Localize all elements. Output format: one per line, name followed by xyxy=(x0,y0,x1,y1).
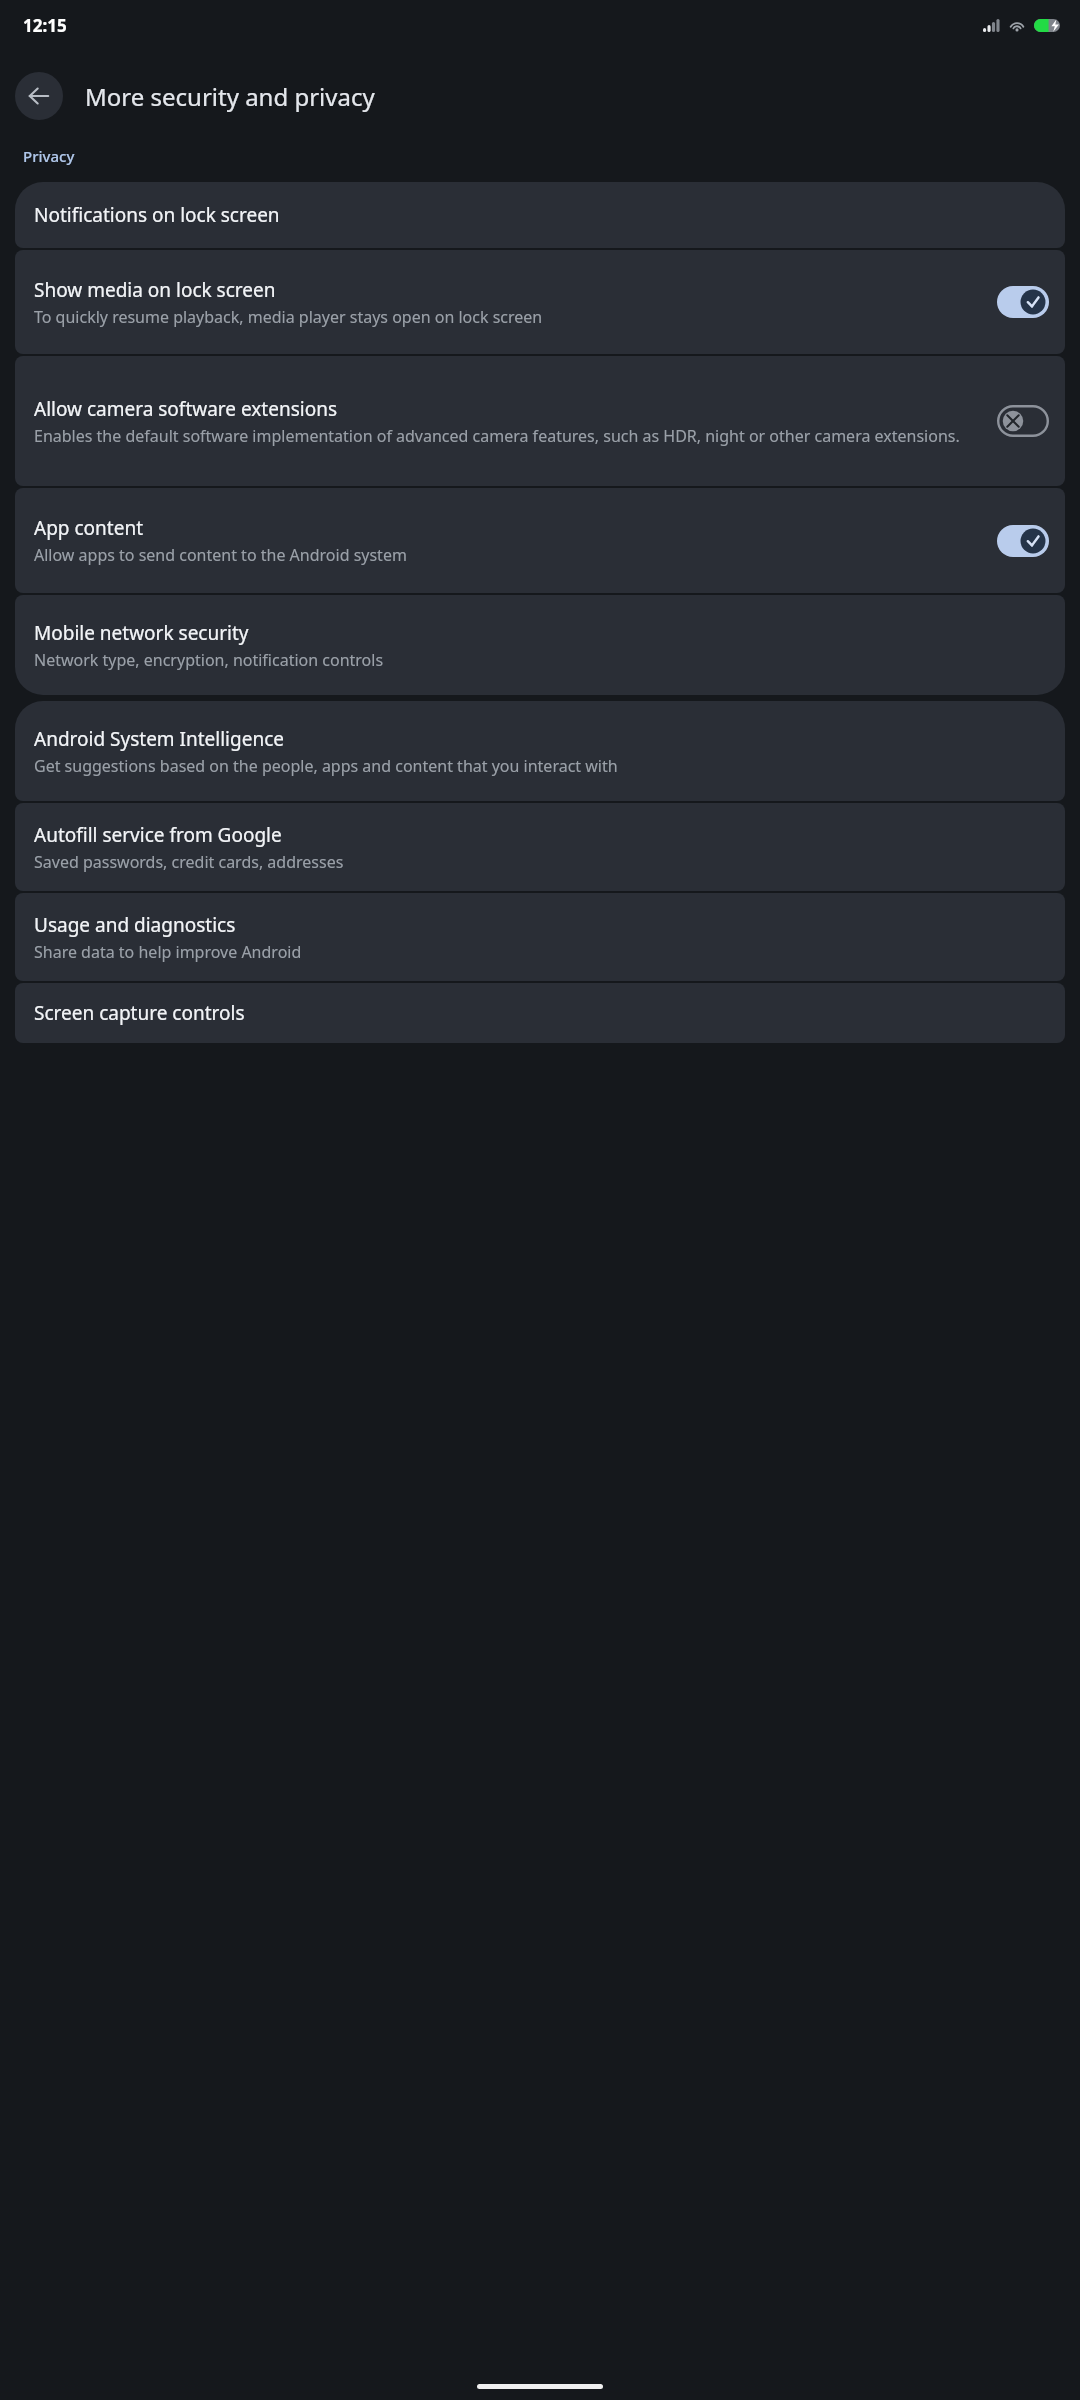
button[interactable]: Notifications on lock screen xyxy=(15,182,1065,248)
staticText: Network type, encryption, notification c… xyxy=(34,649,384,671)
staticText: App content xyxy=(34,515,143,541)
staticText: Saved passwords, credit cards, addresses xyxy=(34,851,344,873)
button[interactable]: Allow camera software extensions xyxy=(15,356,1065,486)
staticText: Notifications on lock screen xyxy=(34,202,280,228)
button[interactable]: Screen capture controls xyxy=(15,983,1065,1043)
staticText: More security and privacy xyxy=(85,80,375,113)
staticText: Android System Intelligence xyxy=(34,726,285,752)
button[interactable]: Toggle on xyxy=(997,525,1049,557)
staticText: Share data to help improve Android xyxy=(34,941,302,963)
staticText: Autofill service from Google xyxy=(34,822,282,848)
staticText: Enables the default software implementat… xyxy=(34,425,960,447)
button[interactable]: Usage and diagnostics xyxy=(15,893,1065,981)
staticText: Allow camera software extensions xyxy=(34,396,338,422)
staticText: 12:15 xyxy=(23,14,67,37)
staticText: Allow apps to send content to the Androi… xyxy=(34,544,407,566)
staticText: Show media on lock screen xyxy=(34,277,276,303)
button[interactable]: Toggle off xyxy=(997,405,1049,437)
staticText: Usage and diagnostics xyxy=(34,912,236,938)
button[interactable]: App content xyxy=(15,488,1065,593)
staticText: Privacy xyxy=(23,146,75,166)
staticText: Mobile network security xyxy=(34,620,249,646)
button[interactable]: Show media on lock screen xyxy=(15,250,1065,354)
staticText: Screen capture controls xyxy=(34,1000,245,1026)
staticText: To quickly resume playback, media player… xyxy=(34,306,543,328)
button[interactable]: Android System Intelligence xyxy=(15,701,1065,801)
button[interactable]: Back xyxy=(15,72,63,120)
button[interactable]: Autofill service from Google xyxy=(15,803,1065,891)
button[interactable]: Mobile network security xyxy=(15,595,1065,695)
button[interactable]: Toggle on xyxy=(997,286,1049,318)
staticText: Get suggestions based on the people, app… xyxy=(34,755,618,777)
